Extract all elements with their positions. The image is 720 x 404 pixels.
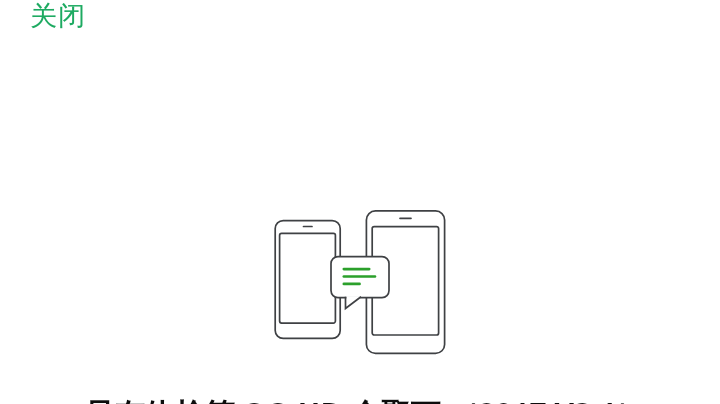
staticText: 关闭: [30, 0, 87, 33]
staticText: 只有体检第 QQ HD 全聚丁 （2017 V3.1）: [84, 393, 647, 404]
button[interactable]: 关闭: [22, 0, 95, 39]
